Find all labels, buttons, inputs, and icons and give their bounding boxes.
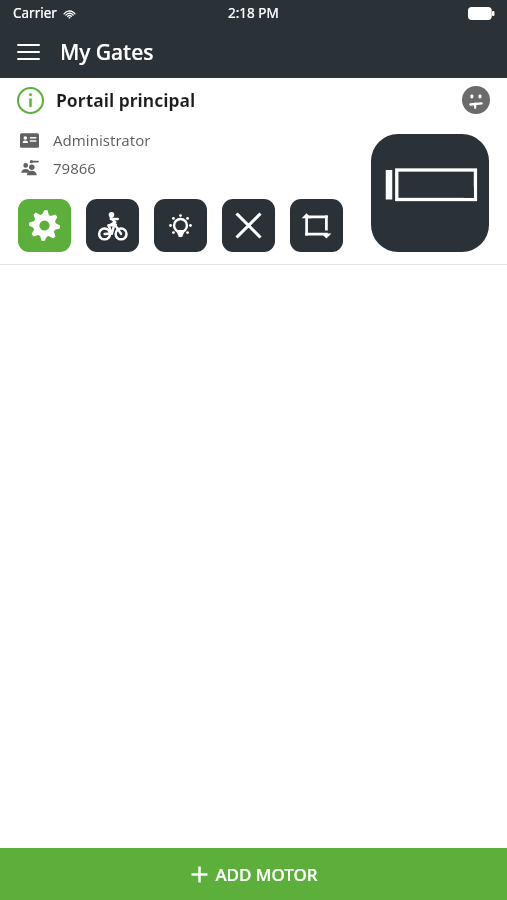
button[interactable]: Settings bbox=[18, 199, 71, 252]
staticText: Administrator bbox=[53, 130, 151, 150]
button[interactable]: Gate state bbox=[371, 134, 489, 252]
staticText: 2:18 PM bbox=[228, 4, 279, 22]
button[interactable]: Status bbox=[462, 86, 490, 114]
staticText: Portail principal bbox=[56, 88, 196, 112]
button[interactable]: Stop bbox=[222, 199, 275, 252]
staticText: 79866 bbox=[53, 158, 96, 178]
button[interactable]: ADD MOTOR bbox=[0, 848, 507, 900]
staticText: My Gates bbox=[60, 38, 154, 67]
button[interactable]: Cycle bbox=[290, 199, 343, 252]
staticText: Carrier bbox=[13, 4, 57, 22]
button[interactable]: Info bbox=[17, 87, 44, 114]
button[interactable]: Pedestrian bbox=[86, 199, 139, 252]
button[interactable]: Light bbox=[154, 199, 207, 252]
staticText: ADD MOTOR bbox=[215, 863, 318, 886]
button[interactable]: Menu bbox=[8, 32, 48, 72]
